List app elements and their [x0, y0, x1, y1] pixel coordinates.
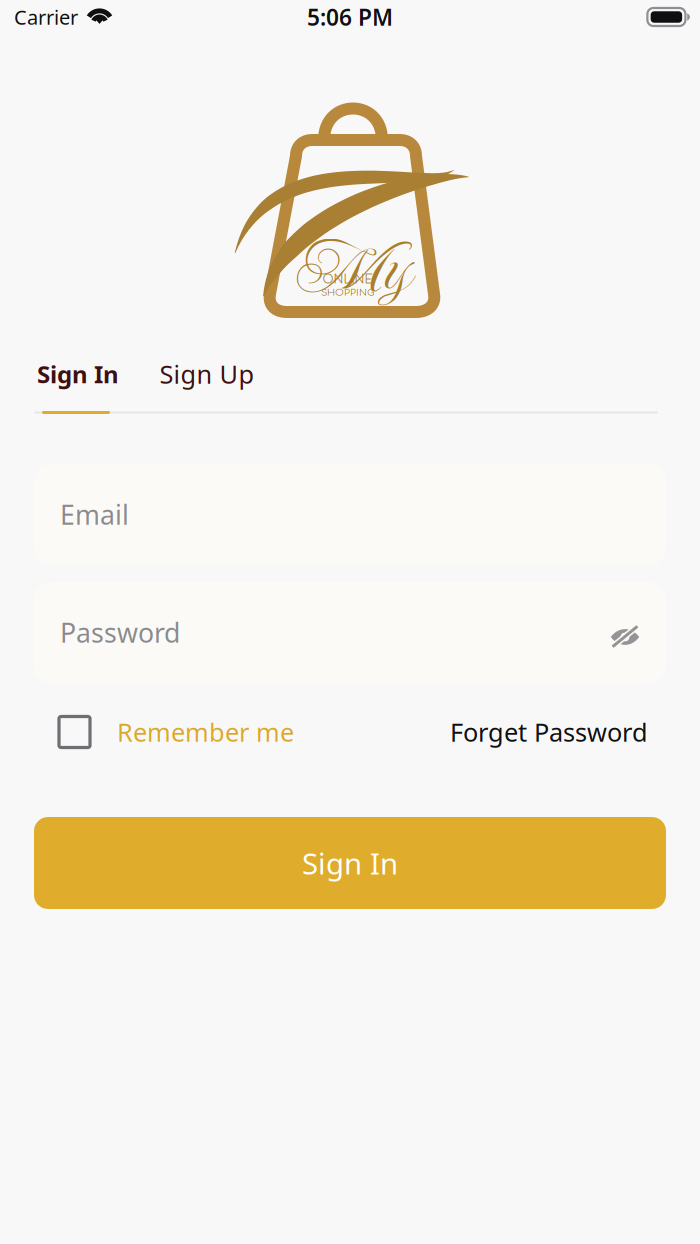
staticText: Sign In [302, 843, 398, 882]
button[interactable]: Forget Password [450, 709, 648, 755]
staticText: My [293, 222, 409, 312]
staticText: Sign Up [159, 357, 254, 391]
button[interactable]: Sign In [34, 357, 122, 391]
staticText: Sign In [37, 358, 119, 390]
staticText: 5:06 PM [307, 2, 393, 32]
staticText: ONLINE [322, 273, 372, 286]
staticText: Remember me [117, 715, 294, 749]
button[interactable]: Show password [602, 608, 644, 656]
staticText: Email [60, 497, 129, 532]
button[interactable]: Sign In [34, 817, 666, 909]
button[interactable]: Sign Up [159, 357, 255, 391]
staticText: Forget Password [450, 715, 648, 749]
button[interactable]: Remember me [59, 709, 294, 755]
staticText: SHOPPING [321, 287, 374, 298]
staticText: Password [60, 615, 180, 650]
staticText: Carrier [14, 4, 78, 30]
